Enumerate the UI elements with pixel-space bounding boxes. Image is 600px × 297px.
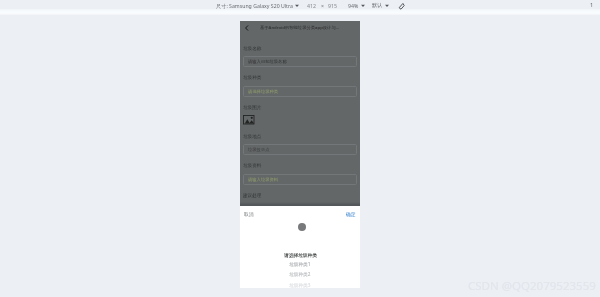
button[interactable]: 请选择垃圾种类 — [240, 251, 360, 259]
staticText: 请输入已知垃圾名称 — [248, 59, 287, 64]
staticText: 垃圾投放点 — [248, 147, 270, 152]
button[interactable]: Back — [241, 22, 251, 34]
button[interactable]: 请输入已知垃圾名称 — [243, 56, 357, 67]
staticText: 垃圾资料 — [243, 163, 262, 169]
staticText: 垃圾种类 — [243, 75, 262, 81]
button[interactable]: Attach — [396, 1, 405, 10]
staticText: 确定 — [346, 211, 356, 217]
button[interactable]: 请输入垃圾资料 — [243, 174, 357, 185]
staticText: × — [321, 2, 324, 9]
staticText: 请选择垃圾种类 — [284, 252, 317, 258]
staticText: 915 — [328, 2, 337, 9]
staticText: 垃圾地点 — [243, 134, 262, 140]
staticText: 垃圾种类3 — [289, 282, 311, 288]
staticText: 1 — [590, 1, 594, 8]
staticText: 默认 — [372, 2, 383, 9]
staticText: 建议处理 — [243, 193, 262, 199]
button[interactable]: 取消 — [244, 209, 257, 218]
staticText: 请选择垃圾种类 — [248, 89, 279, 94]
staticText: 94% — [348, 2, 359, 9]
staticText: CSDN @QQ2079523559 — [468, 278, 596, 294]
staticText: 垃圾种类2 — [289, 271, 311, 277]
button[interactable]: 垃圾种类3 — [240, 281, 360, 289]
staticText: 尺寸: Samsung Galaxy S20 Ultra — [216, 2, 293, 9]
staticText: 基于Android的智能垃圾分类app设计与... — [260, 24, 340, 30]
button[interactable]: 请选择垃圾种类 — [243, 86, 357, 97]
staticText: 412 — [307, 2, 316, 9]
staticText: 垃圾种类1 — [289, 261, 311, 267]
staticText: 垃圾图片 — [243, 105, 262, 111]
button[interactable]: 确定 — [346, 209, 359, 218]
staticText: 取消 — [244, 211, 254, 217]
staticText: 请输入垃圾资料 — [248, 177, 279, 182]
button[interactable]: 垃圾投放点 — [243, 144, 357, 155]
button[interactable]: Add image — [243, 115, 255, 125]
button[interactable]: 垃圾种类2 — [240, 270, 360, 278]
button[interactable]: 垃圾种类1 — [240, 260, 360, 268]
staticText: 垃圾名称 — [243, 46, 262, 52]
